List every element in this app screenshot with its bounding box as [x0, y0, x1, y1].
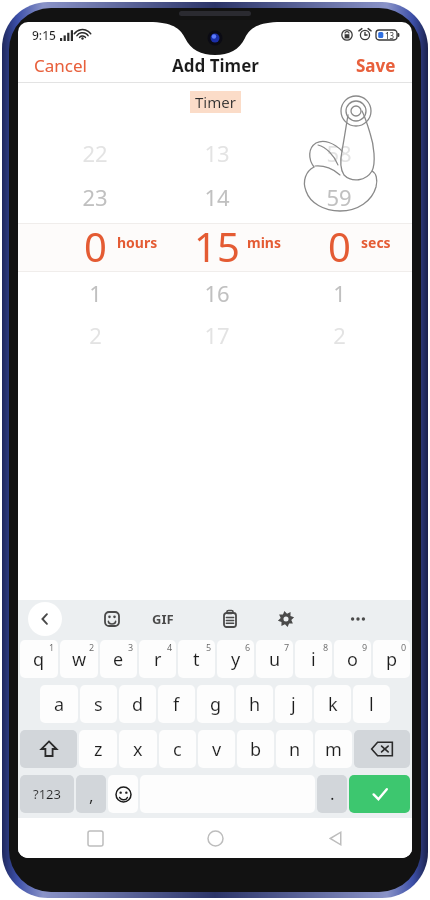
- button[interactable]: Shift: [20, 730, 77, 768]
- button[interactable]: 22: [50, 131, 140, 175]
- button[interactable]: p: [373, 640, 410, 678]
- staticText: o: [347, 647, 358, 672]
- button[interactable]: 13: [172, 131, 262, 175]
- staticText: r: [154, 647, 162, 672]
- staticText: j: [291, 692, 296, 717]
- button[interactable]: 15: [172, 219, 262, 263]
- button[interactable]: g: [197, 685, 234, 723]
- staticText: b: [250, 737, 262, 762]
- staticText: c: [173, 737, 182, 762]
- button[interactable]: o: [334, 640, 371, 678]
- button[interactable]: r: [139, 640, 176, 678]
- staticText: x: [133, 737, 143, 762]
- staticText: 9: [362, 641, 368, 653]
- button[interactable]: Emoji: [108, 775, 138, 813]
- staticText: ,: [89, 784, 94, 807]
- staticText: 9:15: [32, 27, 56, 43]
- button[interactable]: 0: [50, 219, 140, 263]
- staticText: Save: [356, 54, 396, 77]
- button[interactable]: Home: [198, 821, 232, 855]
- staticText: m: [325, 737, 342, 762]
- staticText: p: [386, 647, 398, 672]
- button[interactable]: .: [317, 775, 347, 813]
- staticText: 15: [194, 219, 240, 263]
- button[interactable]: 59: [294, 175, 384, 219]
- button[interactable]: m: [315, 730, 352, 768]
- staticText: v: [212, 737, 222, 762]
- button[interactable]: i: [295, 640, 332, 678]
- button[interactable]: 16: [172, 271, 262, 315]
- staticText: 2: [89, 641, 95, 653]
- button[interactable]: n: [276, 730, 313, 768]
- staticText: 1: [49, 641, 55, 653]
- staticText: a: [54, 692, 65, 717]
- staticText: 22: [82, 138, 108, 168]
- staticText: mins: [247, 233, 281, 252]
- staticText: GIF: [152, 610, 174, 628]
- button[interactable]: j: [275, 685, 312, 723]
- staticText: 59: [326, 182, 352, 212]
- button[interactable]: z: [79, 730, 117, 768]
- button[interactable]: GIF: [148, 606, 178, 632]
- button[interactable]: Backspace: [354, 730, 410, 768]
- button[interactable]: Back: [28, 602, 62, 636]
- button[interactable]: Cancel: [18, 50, 103, 81]
- button[interactable]: Enter: [349, 775, 410, 813]
- button[interactable]: Save: [340, 50, 412, 81]
- staticText: .: [330, 782, 335, 805]
- staticText: 0: [328, 219, 351, 263]
- button[interactable]: v: [198, 730, 235, 768]
- button[interactable]: Clipboard: [214, 603, 246, 635]
- button[interactable]: a: [40, 685, 78, 723]
- button[interactable]: t: [178, 640, 215, 678]
- button[interactable]: e: [100, 640, 137, 678]
- button[interactable]: Timer: [190, 91, 241, 113]
- button[interactable]: More options: [342, 603, 374, 635]
- button[interactable]: f: [158, 685, 195, 723]
- button[interactable]: 58: [294, 131, 384, 175]
- button[interactable]: d: [119, 685, 156, 723]
- button[interactable]: c: [159, 730, 196, 768]
- button[interactable]: Recents: [78, 821, 112, 855]
- staticText: i: [311, 647, 316, 672]
- staticText: d: [132, 692, 144, 717]
- button[interactable]: w: [60, 640, 98, 678]
- staticText: q: [33, 647, 45, 672]
- button[interactable]: h: [236, 685, 273, 723]
- button[interactable]: s: [80, 685, 117, 723]
- button[interactable]: 2: [50, 313, 140, 357]
- button[interactable]: 14: [172, 175, 262, 219]
- button[interactable]: 1: [50, 271, 140, 315]
- button[interactable]: Settings: [270, 603, 302, 635]
- staticText: 23: [82, 182, 108, 212]
- button[interactable]: ?123: [20, 775, 74, 813]
- staticText: Cancel: [34, 54, 87, 77]
- button[interactable]: 17: [172, 313, 262, 357]
- staticText: 0: [401, 641, 407, 653]
- staticText: w: [72, 647, 87, 672]
- button[interactable]: Sticker: [96, 603, 128, 635]
- button[interactable]: u: [256, 640, 293, 678]
- button[interactable]: y: [217, 640, 254, 678]
- button[interactable]: l: [353, 685, 390, 723]
- button[interactable]: 0: [294, 219, 384, 263]
- staticText: u: [269, 647, 281, 672]
- staticText: z: [94, 737, 103, 762]
- staticText: 1: [333, 278, 346, 308]
- button[interactable]: b: [237, 730, 274, 768]
- button[interactable]: Back: [318, 821, 352, 855]
- button[interactable]: 2: [294, 313, 384, 357]
- button[interactable]: 23: [50, 175, 140, 219]
- button[interactable]: q: [20, 640, 58, 678]
- staticText: 7: [284, 641, 290, 653]
- staticText: s: [94, 692, 103, 717]
- button[interactable]: k: [314, 685, 351, 723]
- button[interactable]: ,: [76, 775, 106, 813]
- button[interactable]: 1: [294, 271, 384, 315]
- staticText: 6: [245, 641, 251, 653]
- button[interactable]: x: [119, 730, 157, 768]
- staticText: 13: [204, 138, 230, 168]
- staticText: y: [231, 647, 241, 672]
